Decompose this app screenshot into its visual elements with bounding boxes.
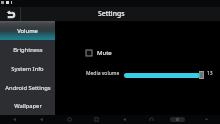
- button[interactable]: Home: [58, 115, 80, 124]
- staticText: 13: [207, 70, 213, 77]
- button[interactable]: Volume: [0, 21, 55, 40]
- button[interactable]: Previous: [113, 115, 135, 124]
- button[interactable]: Volume: [170, 117, 185, 122]
- button[interactable]: Brightness: [0, 40, 55, 59]
- staticText: Android Settings: [5, 84, 51, 92]
- button[interactable]: System Info: [0, 59, 55, 78]
- button[interactable]: Mute: [86, 49, 112, 57]
- staticText: Settings: [98, 9, 125, 18]
- button[interactable]: Media volume slider: [124, 73, 200, 78]
- button[interactable]: Back: [30, 115, 52, 124]
- button[interactable]: Android Settings: [0, 78, 55, 97]
- staticText: Wallpaper: [14, 102, 42, 110]
- staticText: Media volume: [86, 70, 120, 77]
- staticText: System Info: [11, 65, 44, 73]
- button[interactable]: Back: [3, 115, 25, 124]
- button[interactable]: Recents: [85, 115, 107, 124]
- button[interactable]: Headset: [140, 115, 162, 124]
- button[interactable]: Wallpaper: [0, 97, 55, 115]
- staticText: Volume: [17, 27, 38, 35]
- button[interactable]: Back: [0, 7, 20, 21]
- button[interactable]: More options: [195, 115, 217, 124]
- staticText: Mute: [97, 49, 112, 57]
- staticText: Brightness: [13, 46, 43, 54]
